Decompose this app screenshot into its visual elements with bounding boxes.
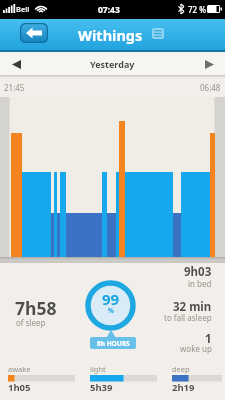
staticText: 06:48 <box>200 82 221 93</box>
staticText: % <box>108 306 114 315</box>
staticText: Withings <box>78 25 143 45</box>
staticText: 72 % <box>188 4 207 15</box>
staticText: awake <box>8 364 31 374</box>
staticText: 2h19 <box>172 381 195 394</box>
staticText: 1h05 <box>8 381 31 394</box>
button[interactable] <box>201 56 217 72</box>
staticText: 32 min <box>173 299 212 315</box>
staticText: deep <box>172 364 190 374</box>
staticText: 8h HOURS <box>97 339 130 348</box>
staticText: 99 <box>102 289 120 309</box>
staticText: woke up <box>180 343 212 354</box>
staticText: in bed <box>188 278 212 289</box>
staticText: 21:45 <box>4 82 25 93</box>
staticText: of sleep <box>16 317 46 328</box>
button[interactable]: deep <box>172 363 222 395</box>
button[interactable] <box>152 28 165 39</box>
staticText: 5h39 <box>90 381 113 394</box>
button[interactable] <box>20 23 48 43</box>
staticText: 7h58 <box>15 296 57 320</box>
button[interactable] <box>8 56 24 72</box>
staticText: to fall asleep <box>164 312 212 323</box>
staticText: 1 <box>205 331 212 347</box>
staticText: Yesterday <box>90 58 135 70</box>
button[interactable]: 8h HOURS <box>90 337 136 349</box>
staticText: light <box>90 364 106 374</box>
staticText: 9h03 <box>184 264 212 280</box>
button[interactable]: awake <box>8 363 75 395</box>
button[interactable]: light <box>90 363 157 395</box>
staticText: 07:43 <box>98 4 120 16</box>
staticText: Bell <box>16 4 30 14</box>
